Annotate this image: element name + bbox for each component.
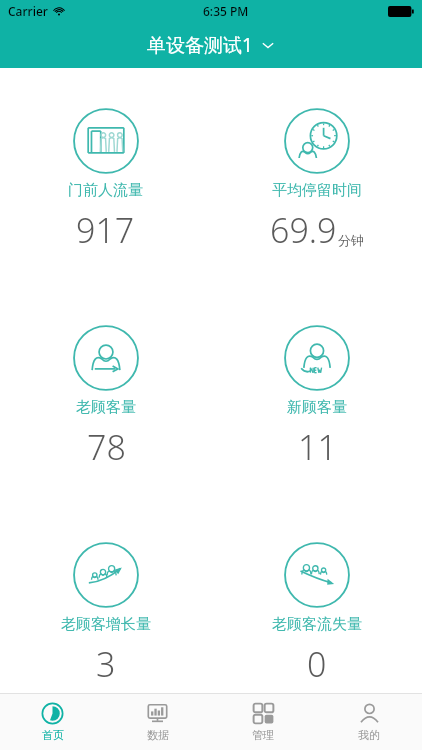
button[interactable]: 老顾客增长量 <box>55 542 157 687</box>
other: 老顾客增长量 <box>73 542 139 608</box>
button[interactable]: 单设备测试1 <box>133 28 289 62</box>
other: 老顾客流失量 <box>284 542 350 608</box>
button[interactable]: 老顾客量 <box>67 325 145 470</box>
staticText: 我的 <box>358 728 380 742</box>
button[interactable]: 老顾客流失量 <box>266 542 368 687</box>
staticText: 单设备测试1 <box>147 32 253 58</box>
button[interactable]: 管理 <box>210 694 316 750</box>
staticText: 78 <box>87 424 126 470</box>
button[interactable]: 新顾客量 <box>278 325 356 470</box>
staticText: Carrier <box>8 3 48 19</box>
other: 门前人流量 <box>73 108 139 174</box>
staticText: 管理 <box>252 728 274 742</box>
staticText: 新顾客量 <box>287 398 347 417</box>
button[interactable]: 我的 <box>316 694 422 750</box>
button[interactable]: 平均停留时间 <box>264 108 370 253</box>
staticText: 917 <box>76 207 135 253</box>
other: 新顾客量 <box>284 325 350 391</box>
staticText: 11 <box>298 424 337 470</box>
staticText: 平均停留时间 <box>272 181 362 200</box>
staticText: 分钟 <box>338 232 364 248</box>
staticText: 老顾客流失量 <box>272 615 362 634</box>
other: 老顾客量 <box>73 325 139 391</box>
staticText: 老顾客增长量 <box>61 615 151 634</box>
button[interactable]: 首页 <box>0 694 105 750</box>
staticText: 3 <box>96 641 116 687</box>
staticText: 数据 <box>147 728 169 742</box>
staticText: 6:35 PM <box>203 3 249 19</box>
other: 平均停留时间 <box>284 108 350 174</box>
button[interactable]: 数据 <box>105 694 210 750</box>
staticText: 首页 <box>42 728 64 742</box>
staticText: 老顾客量 <box>76 398 136 417</box>
staticText: 0 <box>307 641 327 687</box>
staticText: 门前人流量 <box>68 181 143 200</box>
button[interactable]: 门前人流量 <box>62 108 149 253</box>
staticText: 69.9 <box>270 207 337 253</box>
